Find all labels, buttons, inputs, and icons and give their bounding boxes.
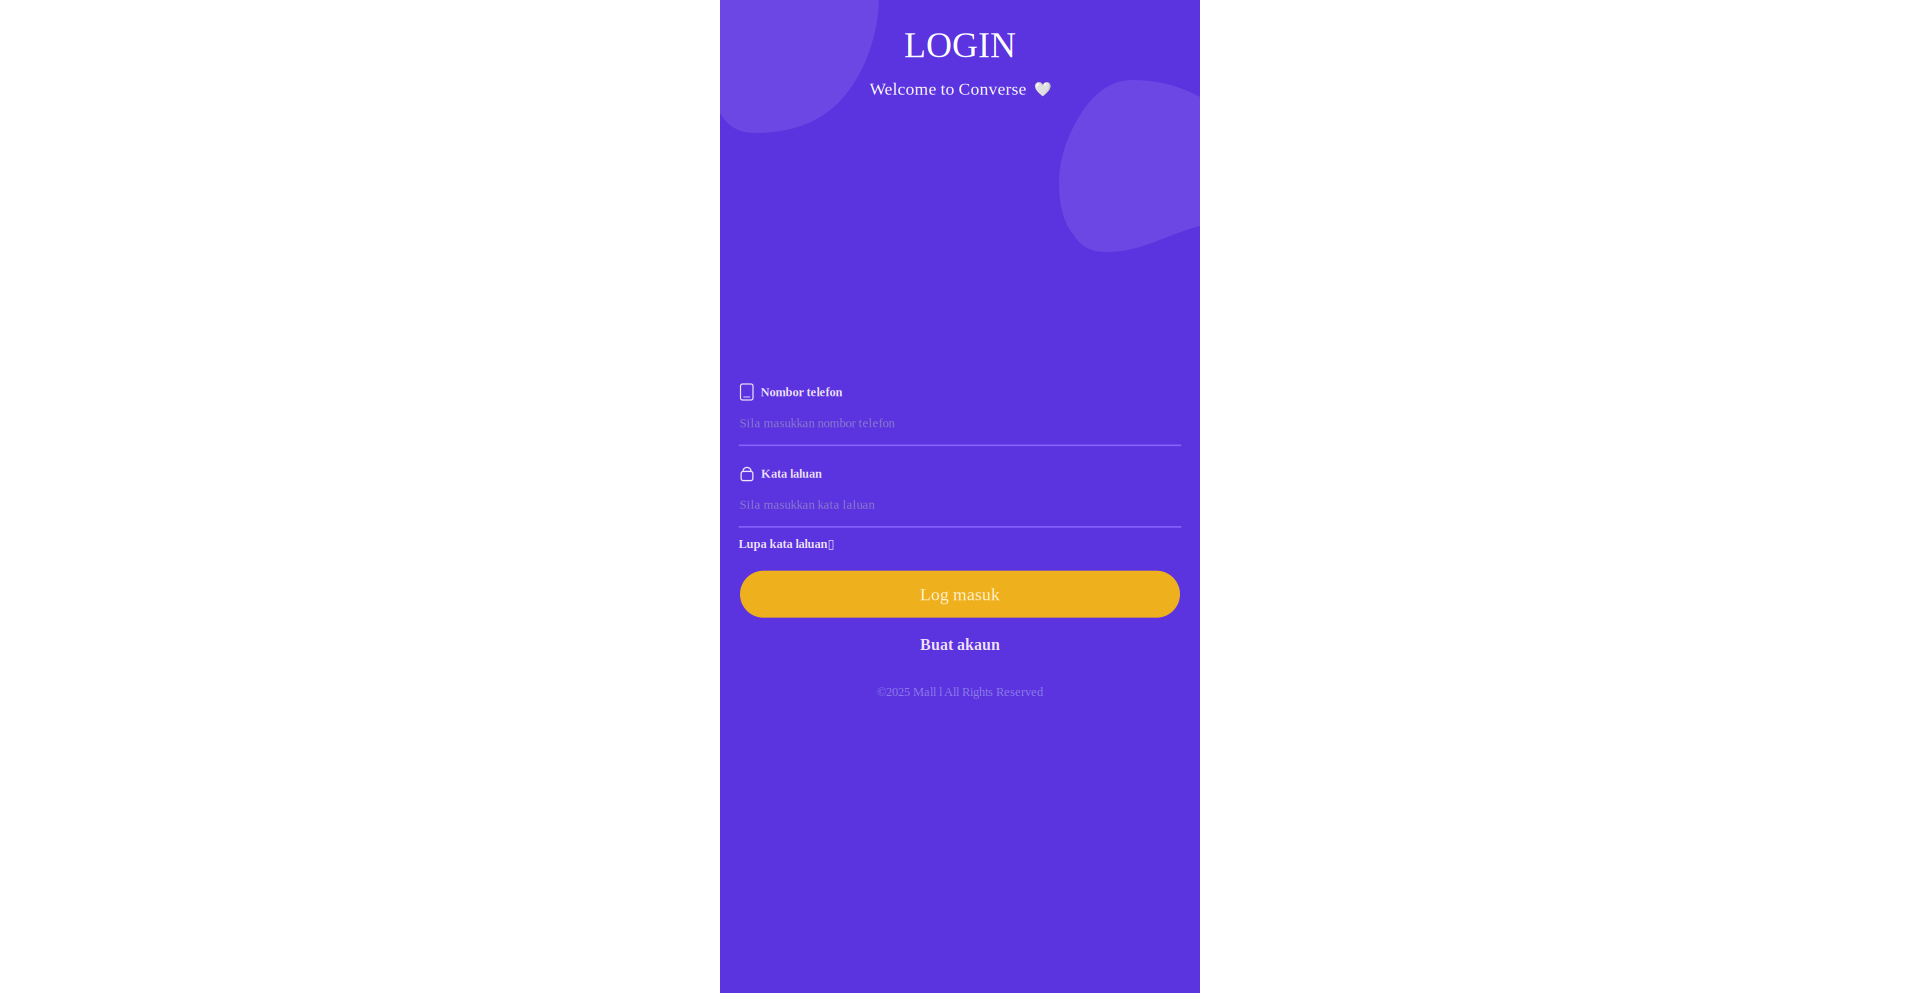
button[interactable]: Buat akaun bbox=[860, 632, 1060, 658]
staticText: Nombor telefon bbox=[760, 385, 842, 399]
staticText: Buat akaun bbox=[920, 636, 1000, 653]
button[interactable]: Kata laluan bbox=[738, 466, 1181, 528]
staticText: Lupa kata laluan▯ bbox=[738, 536, 834, 551]
staticText: LOGIN bbox=[904, 25, 1016, 65]
staticText: ©2025 Mall l All Rights Reserved bbox=[877, 685, 1043, 698]
staticText: Log masuk bbox=[920, 584, 1000, 604]
button[interactable]: Nombor telefon bbox=[738, 384, 1181, 446]
staticText: 🤍 bbox=[1033, 81, 1050, 97]
staticText: Sila masukkan kata laluan bbox=[739, 498, 874, 512]
staticText: Sila masukkan nombor telefon bbox=[739, 416, 894, 430]
staticText: Welcome to Converse bbox=[869, 79, 1026, 99]
button[interactable]: Log masuk bbox=[740, 571, 1180, 618]
button[interactable]: Lupa kata laluan▯ bbox=[738, 534, 1181, 554]
staticText: Kata laluan bbox=[761, 467, 822, 480]
